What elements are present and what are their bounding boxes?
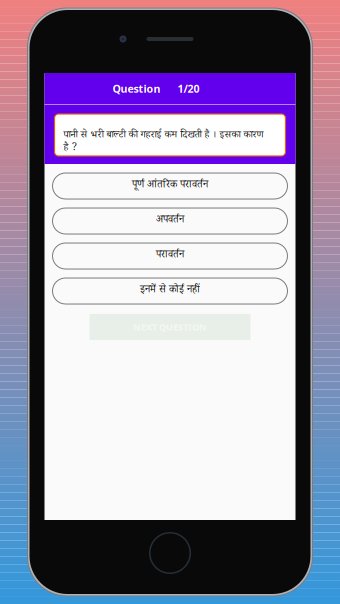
staticText: NEXT QUESTION — [133, 321, 207, 333]
button[interactable]: इनमें से कोई नहीं — [52, 278, 287, 304]
button[interactable]: परावर्तन — [52, 243, 287, 269]
staticText: पूर्ण आंतरिक परावर्तन — [132, 178, 208, 194]
staticText: अपवर्तन — [156, 213, 184, 229]
staticText: पानी से भरी बाल्टी की गहराई कम दिखती है … — [63, 128, 263, 156]
staticText: 1/20 — [177, 81, 199, 96]
staticText: परावर्तन — [156, 248, 184, 264]
button[interactable]: पूर्ण आंतरिक परावर्तन — [52, 173, 287, 199]
button[interactable]: अपवर्तन — [52, 208, 287, 234]
staticText: इनमें से कोई नहीं — [140, 283, 200, 299]
staticText: Question — [112, 81, 160, 96]
